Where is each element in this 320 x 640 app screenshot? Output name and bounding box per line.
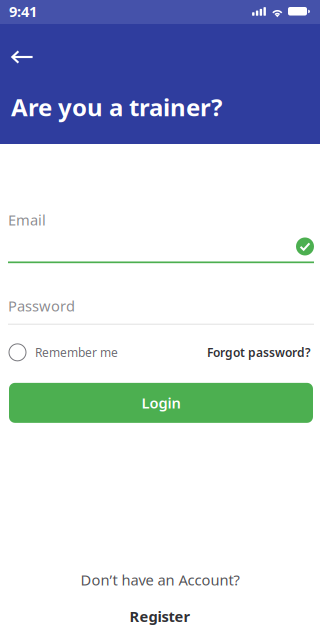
staticText: 9:41 bbox=[9, 1, 37, 21]
button[interactable]: Login bbox=[9, 383, 313, 423]
button[interactable]: Back bbox=[0, 24, 47, 91]
staticText: Are you a trainer? bbox=[11, 91, 222, 123]
button[interactable]: Remember me bbox=[0, 344, 118, 361]
button[interactable]: Password bbox=[0, 296, 320, 325]
staticText: Register bbox=[129, 606, 190, 626]
staticText: Forgot password? bbox=[207, 344, 311, 360]
staticText: Remember me bbox=[35, 344, 118, 360]
staticText: Login bbox=[141, 393, 180, 413]
button[interactable]: Register bbox=[129, 606, 190, 626]
staticText: Email bbox=[8, 210, 46, 229]
staticText: Don’t have an Account? bbox=[80, 570, 239, 589]
button[interactable]: Forgot password? bbox=[207, 344, 320, 360]
staticText: Password bbox=[8, 296, 75, 316]
button[interactable]: Email bbox=[0, 210, 320, 263]
